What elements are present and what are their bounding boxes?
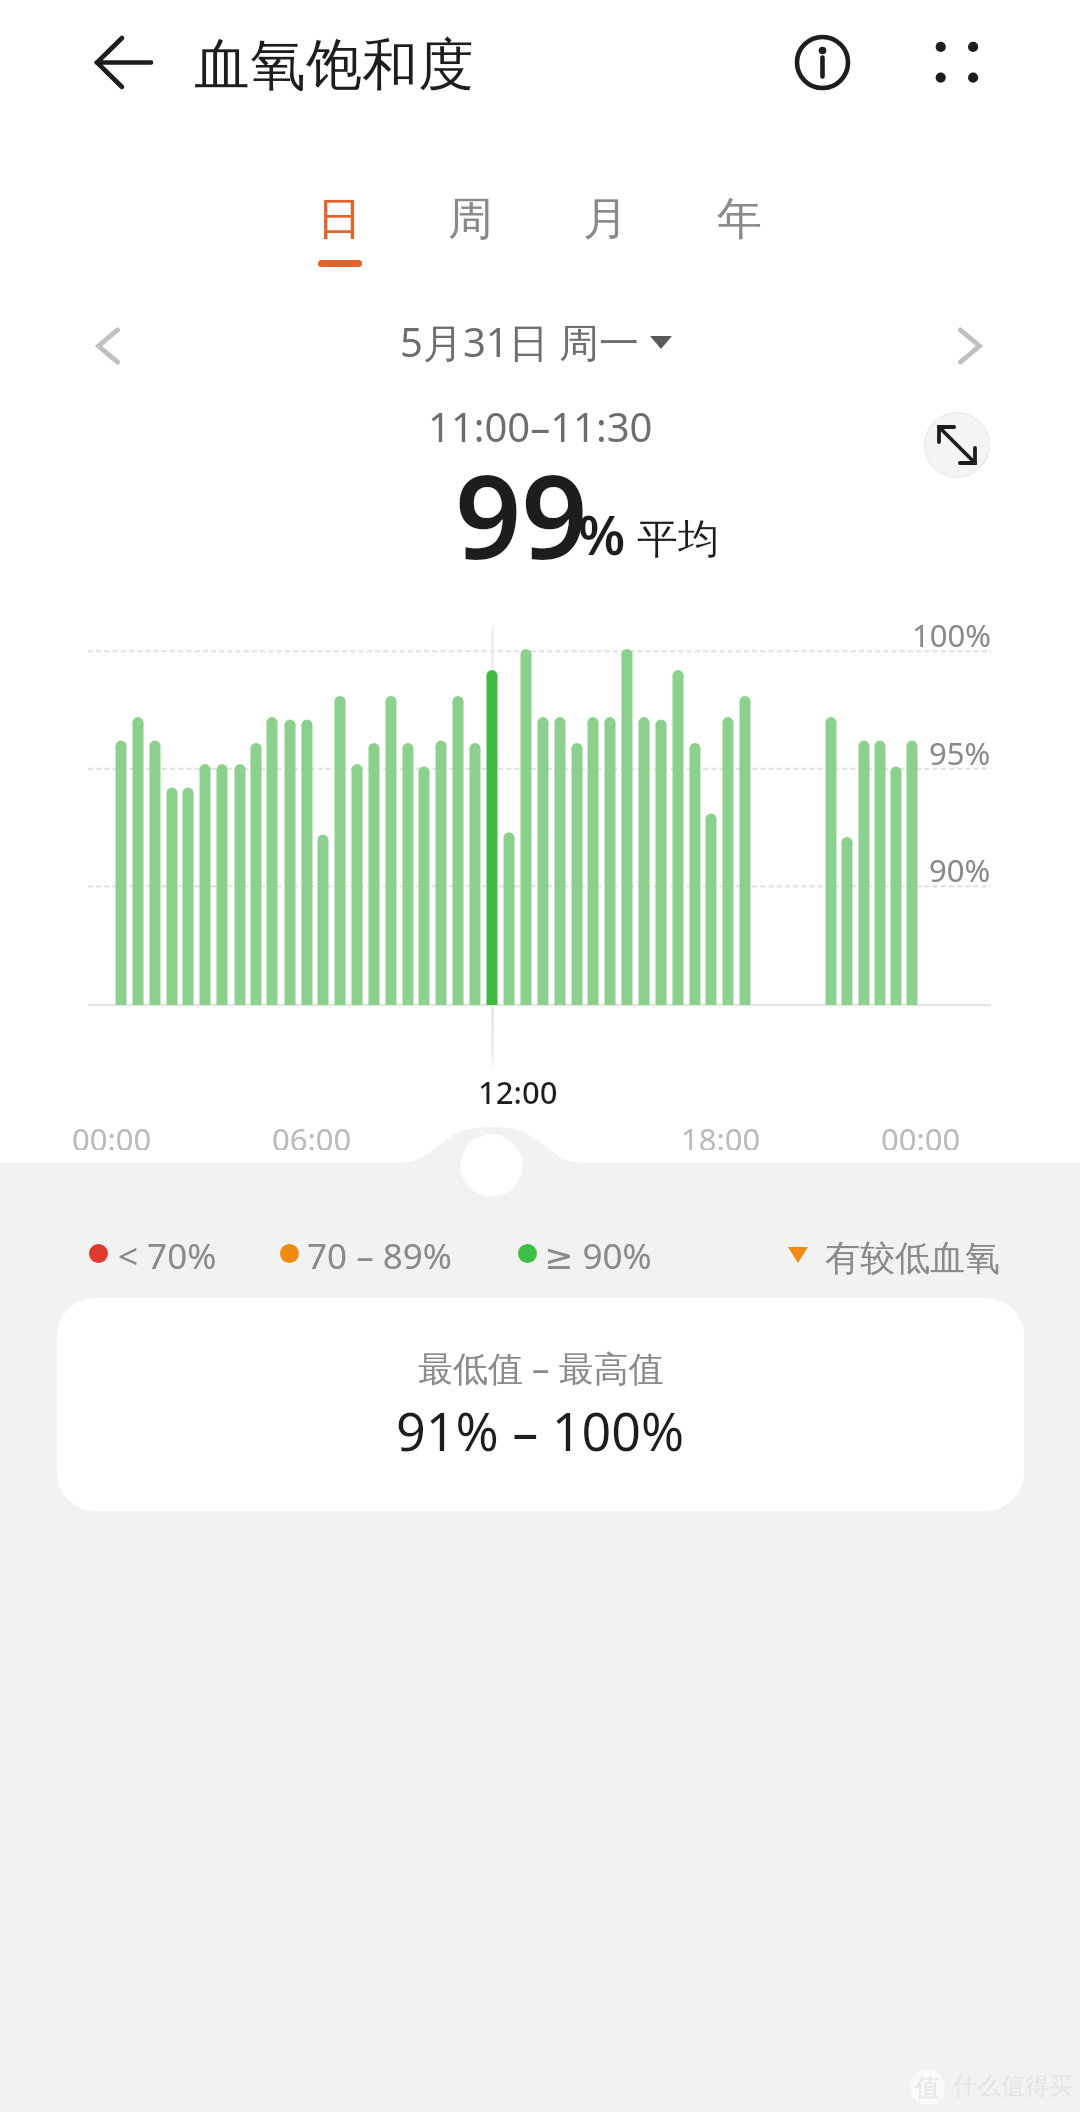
button[interactable]: 月: [548, 191, 662, 283]
staticText: 00:00: [72, 1118, 152, 1150]
button[interactable]: 日: [282, 191, 396, 283]
button[interactable]: Back: [92, 33, 156, 93]
staticText: 周: [448, 191, 493, 248]
staticText: %: [578, 497, 626, 571]
button[interactable]: 年: [682, 191, 796, 283]
staticText: 100%: [912, 614, 991, 647]
staticText: ≥ 90%: [544, 1232, 652, 1280]
staticText: 90%: [929, 849, 991, 882]
button[interactable]: More options: [925, 32, 989, 92]
button[interactable]: Time scrubber: [452, 1126, 532, 1206]
staticText: 血氧饱和度: [194, 30, 474, 101]
button[interactable]: Info: [789, 29, 856, 96]
staticText: 95%: [929, 732, 991, 765]
staticText: 有较低血氧: [825, 1236, 1000, 1280]
staticText: 91% – 100%: [396, 1395, 685, 1466]
staticText: 00:00: [881, 1118, 961, 1150]
button[interactable]: Next day: [938, 315, 1000, 377]
staticText: 11:00–11:30: [428, 399, 653, 453]
staticText: 5月31日 周一: [400, 314, 640, 369]
staticText: 年: [717, 191, 762, 248]
button[interactable]: 最低值 – 最高值: [57, 1298, 1024, 1511]
staticText: 值: [915, 2072, 940, 2103]
staticText: 99: [455, 435, 588, 593]
staticText: 月: [583, 191, 628, 248]
staticText: 06:00: [272, 1118, 352, 1150]
staticText: 最低值 – 最高值: [418, 1344, 664, 1392]
button[interactable]: 5月31日 周一: [390, 305, 682, 367]
button[interactable]: 周: [413, 191, 527, 283]
button[interactable]: Previous day: [78, 315, 140, 377]
button[interactable]: Expand chart: [924, 412, 990, 478]
staticText: 70 – 89%: [307, 1232, 452, 1280]
staticText: 平均: [637, 514, 719, 566]
staticText: 什么值得买: [953, 2071, 1073, 2101]
staticText: < 70%: [118, 1232, 217, 1280]
staticText: 18:00: [681, 1118, 761, 1150]
staticText: 12:00: [478, 1071, 558, 1105]
staticText: 日: [317, 191, 362, 248]
